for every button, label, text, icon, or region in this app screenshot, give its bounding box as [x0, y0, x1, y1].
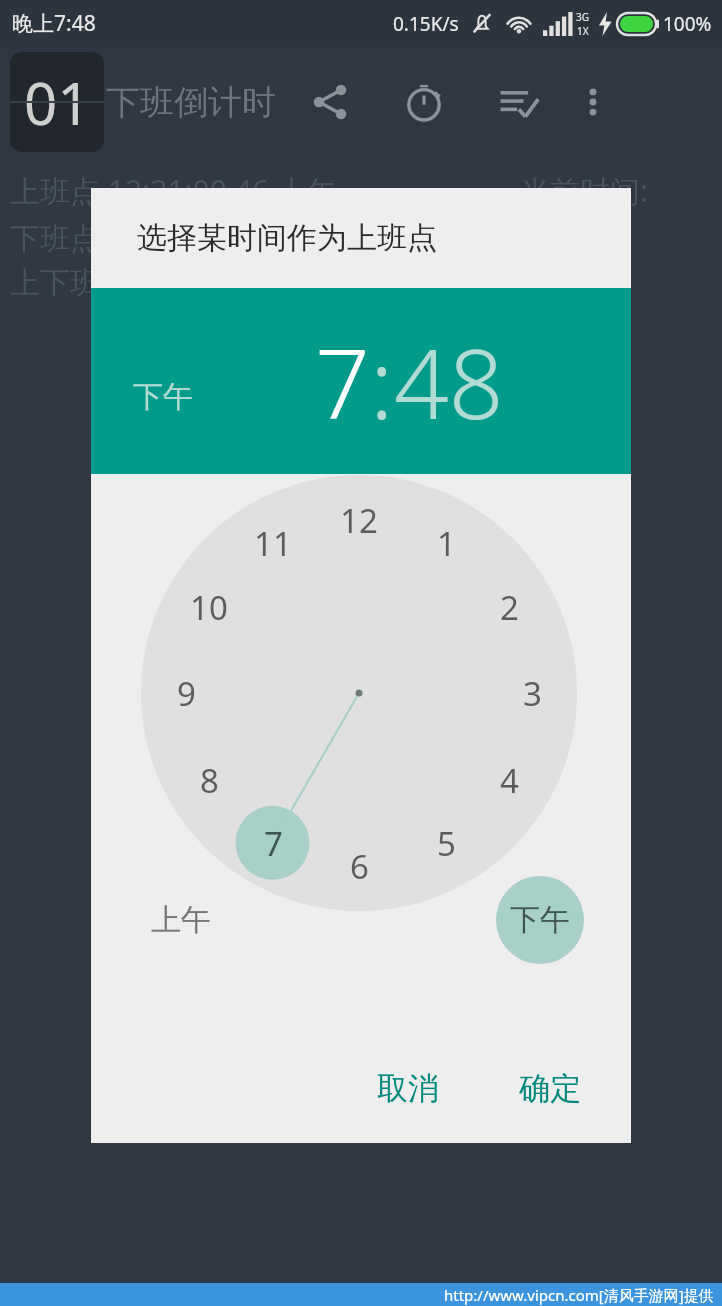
button[interactable]: 9 [156, 667, 216, 719]
button[interactable]: 48 [394, 316, 504, 447]
staticText: : [370, 316, 394, 447]
staticText: 8 [200, 758, 219, 803]
staticText: 3G [576, 10, 589, 24]
button[interactable]: 3 [502, 667, 562, 719]
staticText: 2 [500, 585, 519, 630]
staticText: 下班点 18:00:00 [10, 217, 227, 258]
button[interactable]: 12 [329, 494, 389, 546]
staticText: 上午 [151, 901, 211, 939]
staticText: 01 [24, 63, 91, 142]
staticText: 当前时间: [520, 170, 649, 211]
button[interactable]: 2 [479, 581, 539, 633]
button[interactable]: 7 [243, 817, 303, 869]
button[interactable]: 下午 [133, 378, 193, 416]
staticText: 6 [350, 844, 369, 889]
button[interactable]: 确定 [497, 1053, 603, 1124]
staticText: http://www.vipcn.com[清风手游网]提供 [444, 1285, 714, 1305]
button[interactable]: 7 [315, 316, 370, 447]
staticText: 11 [254, 521, 292, 566]
button[interactable]: 1 [416, 517, 476, 569]
staticText: 4 [500, 758, 519, 803]
button[interactable]: More options [570, 79, 616, 125]
staticText: 选择某时间作为上班点 [137, 219, 437, 257]
staticText: 10 [190, 585, 228, 630]
staticText: 7 [264, 821, 283, 866]
button[interactable]: 8 [179, 754, 239, 806]
staticText: 12 [340, 498, 378, 543]
staticText: 上班点 12:31:00 46 上午 [10, 170, 337, 211]
button[interactable]: 5 [416, 817, 476, 869]
staticText: 1X [577, 24, 589, 38]
button[interactable]: Share [302, 74, 358, 130]
staticText: 100% [663, 11, 712, 37]
staticText: 3 [523, 671, 542, 716]
staticText: 1 [437, 521, 456, 566]
button[interactable]: 取消 [355, 1053, 461, 1124]
staticText: 取消 [377, 1069, 439, 1108]
staticText: 下午 [510, 901, 570, 939]
staticText: 上下班时间 [10, 264, 160, 302]
staticText: 9 [177, 671, 196, 716]
staticText: 0.15K/s [393, 11, 459, 37]
button[interactable]: 11 [243, 517, 303, 569]
button[interactable]: 4 [479, 754, 539, 806]
button[interactable]: 上午 [137, 876, 225, 964]
staticText: 下班倒计时 [106, 81, 276, 124]
staticText: 确定 [519, 1069, 581, 1108]
button[interactable]: 6 [329, 840, 389, 892]
staticText: 5 [437, 821, 456, 866]
button[interactable]: 下午 [496, 876, 584, 964]
button[interactable]: Timer [396, 74, 452, 130]
button[interactable]: Tasks [490, 74, 546, 130]
staticText: 晚上7:48 [12, 9, 96, 38]
button[interactable]: 10 [179, 581, 239, 633]
